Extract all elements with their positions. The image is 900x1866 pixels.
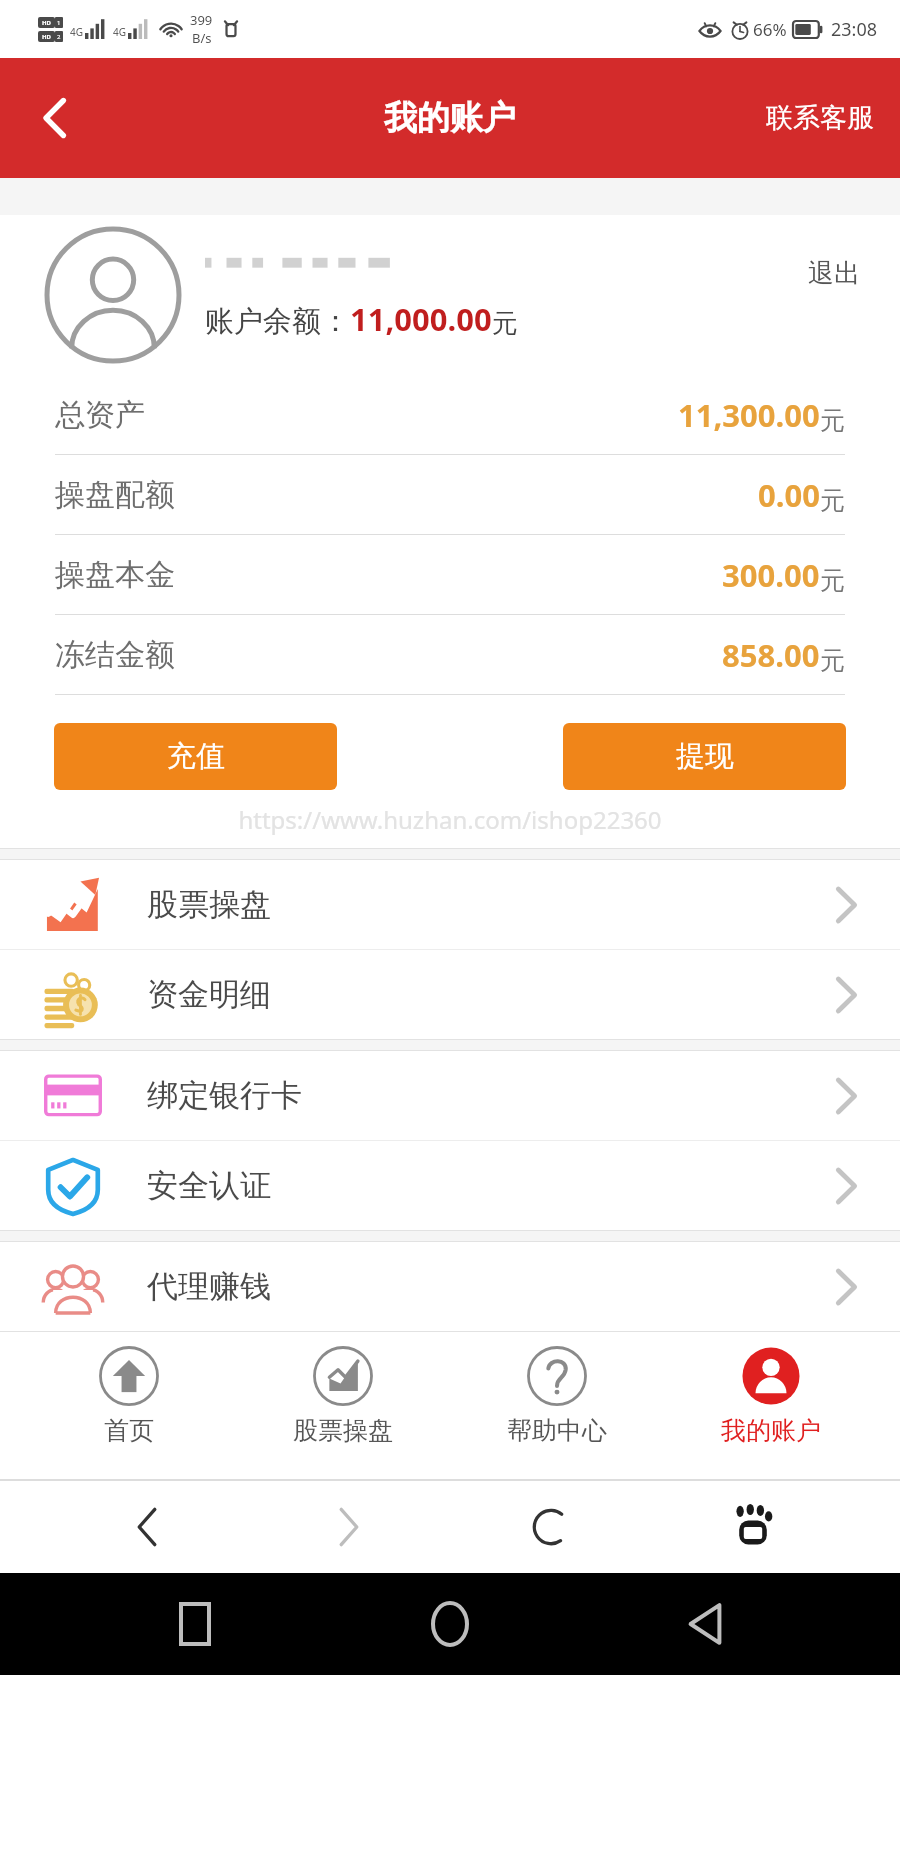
button[interactable]: 退出 — [802, 251, 866, 296]
staticText: HD — [42, 33, 51, 41]
staticText: 我的账户 — [384, 97, 516, 139]
staticText: 充值 — [167, 738, 225, 775]
button[interactable]: 提现 — [563, 723, 846, 790]
button[interactable]: Back — [92, 1482, 202, 1572]
button[interactable]: 绑定银行卡 — [0, 1051, 900, 1140]
staticText: 1 — [57, 19, 61, 27]
staticText: 操盘本金 — [55, 556, 175, 594]
button[interactable]: 代理赚钱 — [0, 1242, 900, 1331]
button[interactable]: Back — [0, 58, 110, 178]
staticText: 11,000.00 — [350, 298, 492, 340]
button[interactable]: 帮助中心 — [472, 1345, 642, 1481]
button[interactable]: 首页 — [44, 1345, 214, 1481]
staticText: 我的账户 — [721, 1415, 821, 1446]
staticText: 元 — [820, 565, 845, 596]
button[interactable]: 我的账户 — [686, 1345, 856, 1481]
button[interactable]: Home — [390, 1574, 510, 1674]
staticText: 绑定银行卡 — [147, 1076, 302, 1115]
staticText: 2 — [57, 33, 61, 41]
staticText: 元 — [492, 307, 518, 340]
button[interactable]: 安全认证 — [0, 1141, 900, 1230]
staticText: 联系客服 — [766, 101, 874, 135]
button[interactable]: 资金明细 — [0, 950, 900, 1039]
staticText: 首页 — [104, 1415, 154, 1446]
staticText: 退出 — [808, 257, 860, 290]
staticText: 11,300.00 — [678, 394, 820, 436]
staticText: 帮助中心 — [507, 1415, 607, 1446]
staticText: 冻结金额 — [55, 636, 175, 674]
staticText: 股票操盘 — [293, 1415, 393, 1446]
button[interactable]: 股票操盘 — [258, 1345, 428, 1481]
button[interactable]: 充值 — [54, 723, 337, 790]
staticText: 提现 — [676, 738, 734, 775]
button[interactable]: Back — [645, 1574, 765, 1674]
staticText: https://www.huzhan.com/ishop22360 — [238, 803, 662, 836]
staticText: 23:08 — [831, 17, 878, 42]
staticText: 账户余额： — [205, 303, 350, 340]
button[interactable]: Recents — [135, 1574, 255, 1674]
staticText: 操盘配额 — [55, 476, 175, 514]
staticText: 代理赚钱 — [147, 1267, 271, 1306]
staticText: 0.00 — [758, 474, 820, 516]
staticText: 66% — [753, 18, 787, 41]
button[interactable]: 联系客服 — [740, 58, 900, 178]
staticText: 元 — [820, 405, 845, 436]
staticText: B/s — [192, 29, 212, 47]
button[interactable]: Forward — [294, 1482, 404, 1572]
staticText: 资金明细 — [147, 975, 271, 1014]
staticText: 300.00 — [722, 554, 820, 596]
staticText: 399 — [190, 11, 213, 29]
button[interactable]: 股票操盘 — [0, 860, 900, 949]
staticText: 4G — [113, 25, 126, 39]
staticText: 安全认证 — [147, 1166, 271, 1205]
staticText: 总资产 — [55, 396, 145, 434]
button[interactable]: Reload — [496, 1482, 606, 1572]
staticText: 858.00 — [722, 634, 820, 676]
button[interactable]: Baidu — [698, 1482, 808, 1572]
staticText: 4G — [70, 25, 83, 39]
staticText: HD — [42, 19, 51, 27]
staticText: 元 — [820, 645, 845, 676]
staticText: 股票操盘 — [147, 885, 271, 924]
staticText: 元 — [820, 485, 845, 516]
